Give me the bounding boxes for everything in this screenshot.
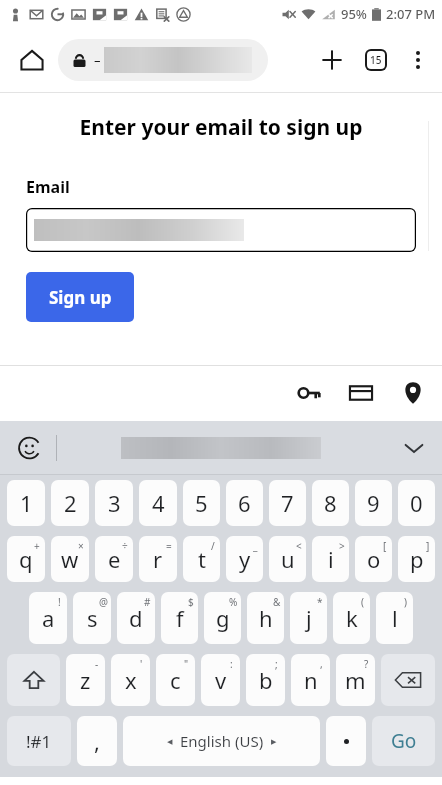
button[interactable]: e <box>95 536 133 582</box>
button[interactable]: 6 <box>226 480 263 526</box>
button[interactable]: 9 <box>355 480 392 526</box>
staticText: & <box>273 595 281 609</box>
staticText: : <box>230 657 233 671</box>
staticText: 7 <box>281 488 294 518</box>
button[interactable]: h <box>247 592 284 644</box>
button[interactable] <box>26 208 416 252</box>
button[interactable]: o <box>355 536 392 582</box>
staticText: p <box>410 544 424 574</box>
staticText: b <box>259 665 273 695</box>
button[interactable]: Switch tabs <box>354 38 398 82</box>
staticText: m <box>345 665 366 695</box>
staticText: $ <box>188 595 194 609</box>
staticText: ] <box>426 539 430 553</box>
button[interactable]: Delete <box>381 654 435 706</box>
staticText: × <box>78 539 84 553</box>
staticText: , <box>320 657 323 671</box>
staticText: q <box>19 544 33 574</box>
button[interactable]: d <box>117 592 155 644</box>
staticText: !#1 <box>26 730 52 753</box>
staticText: 5 <box>195 488 208 518</box>
staticText: e <box>108 544 121 574</box>
staticText: 8 <box>324 488 337 518</box>
button[interactable]: g <box>204 592 241 644</box>
button[interactable]: Payment methods <box>344 376 378 410</box>
staticText: c <box>170 665 181 695</box>
button[interactable]: , <box>77 716 117 766</box>
staticText: " <box>184 657 189 671</box>
button[interactable]: u <box>269 536 306 582</box>
button[interactable]: f <box>161 592 198 644</box>
staticText: ; <box>275 657 278 671</box>
button[interactable]: 7 <box>269 480 306 526</box>
button[interactable]: More suggestions <box>394 428 434 468</box>
button[interactable]: 3 <box>95 480 133 526</box>
staticText: o <box>367 544 381 574</box>
button[interactable]: Passwords <box>292 376 326 410</box>
button[interactable]: q <box>7 536 45 582</box>
staticText: 15 <box>370 53 382 67</box>
button[interactable]: b <box>246 654 285 706</box>
staticText: d <box>129 603 143 633</box>
button[interactable]: m <box>336 654 375 706</box>
button[interactable]: !#1 <box>7 716 71 766</box>
staticText: ? <box>364 657 369 671</box>
button[interactable]: Shift <box>7 654 60 706</box>
button[interactable]: p <box>398 536 435 582</box>
button[interactable]: t <box>183 536 220 582</box>
staticText: Enter your email to sign up <box>0 113 442 142</box>
button[interactable]: c <box>156 654 195 706</box>
button[interactable]: 4 <box>139 480 177 526</box>
button[interactable]: v <box>201 654 240 706</box>
button[interactable]: a <box>29 592 67 644</box>
button[interactable]: 8 <box>312 480 349 526</box>
button[interactable]: More options <box>398 40 438 80</box>
button[interactable]: j <box>290 592 327 644</box>
button[interactable] <box>326 716 366 766</box>
button[interactable]: k <box>333 592 370 644</box>
staticText: t <box>198 544 206 574</box>
button[interactable]: New tab <box>310 38 354 82</box>
button[interactable]: ◂ <box>123 716 320 766</box>
button[interactable]: 2 <box>51 480 89 526</box>
staticText: z <box>80 665 91 695</box>
staticText: _ <box>253 539 258 553</box>
button[interactable]: s <box>73 592 111 644</box>
staticText: < <box>296 539 302 553</box>
staticText: 9 <box>367 488 380 518</box>
staticText: > <box>339 539 345 553</box>
staticText: x <box>125 665 137 695</box>
staticText: y <box>239 544 251 574</box>
button[interactable]: Home <box>10 38 54 82</box>
staticText: ▸ <box>271 735 277 748</box>
button[interactable]: l <box>376 592 413 644</box>
staticText: ' <box>140 657 143 671</box>
button[interactable]: i <box>312 536 349 582</box>
button[interactable]: x <box>111 654 150 706</box>
staticText: v <box>215 665 227 695</box>
button[interactable]: Search or type URL <box>58 39 268 81</box>
staticText: l <box>392 603 398 633</box>
button[interactable]: w <box>51 536 89 582</box>
button[interactable]: Sign up <box>26 272 134 322</box>
button[interactable]: Addresses <box>396 376 430 410</box>
staticText: Email <box>26 176 70 198</box>
button[interactable]: z <box>66 654 105 706</box>
button[interactable]: 0 <box>398 480 435 526</box>
staticText: a <box>42 603 55 633</box>
button[interactable]: Go <box>372 716 435 766</box>
staticText: n <box>304 665 318 695</box>
button[interactable]: r <box>139 536 177 582</box>
staticText: ÷ <box>122 539 128 553</box>
button[interactable]: n <box>291 654 330 706</box>
staticText: s <box>87 603 98 633</box>
staticText: 2 <box>64 488 77 518</box>
staticText: k <box>346 603 358 633</box>
staticText: f <box>176 603 184 633</box>
staticText: i <box>328 544 334 574</box>
staticText: 6 <box>238 488 251 518</box>
button[interactable]: Emoji <box>10 428 50 468</box>
button[interactable]: 5 <box>183 480 220 526</box>
button[interactable]: 1 <box>7 480 45 526</box>
button[interactable]: y <box>226 536 263 582</box>
